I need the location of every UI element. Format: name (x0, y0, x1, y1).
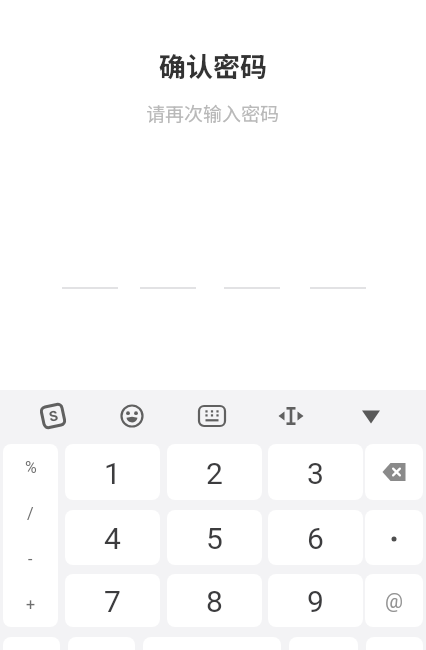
button[interactable] (349, 394, 393, 438)
button[interactable]: 8 (167, 574, 262, 627)
button[interactable]: 4 (65, 510, 160, 565)
button[interactable]: % (3, 444, 58, 490)
button[interactable]: 7 (65, 574, 160, 627)
staticText: - (28, 550, 33, 569)
button[interactable]: 6 (268, 510, 363, 565)
button[interactable] (190, 394, 234, 438)
button[interactable]: / (3, 490, 58, 536)
staticText: 4 (104, 521, 121, 556)
staticText: S (47, 407, 59, 425)
staticText: 6 (307, 521, 324, 556)
staticText: + (26, 595, 36, 614)
button[interactable]: - (3, 536, 58, 582)
staticText: 请再次输入密码 (146, 99, 280, 127)
button[interactable]: 9 (268, 574, 363, 627)
staticText: 8 (206, 584, 223, 619)
button[interactable]: 3 (268, 444, 363, 500)
staticText: 7 (104, 584, 121, 619)
staticText: 3 (307, 456, 324, 491)
button[interactable]: 5 (167, 510, 262, 565)
button[interactable] (365, 510, 423, 565)
button[interactable]: @ (365, 574, 423, 627)
staticText: 确认密码 (159, 46, 267, 85)
staticText: 9 (307, 584, 324, 619)
button[interactable]: 2 (167, 444, 262, 500)
button[interactable] (110, 394, 154, 438)
staticText: @ (385, 589, 403, 612)
button[interactable]: S (39, 402, 67, 430)
button[interactable] (365, 444, 423, 500)
staticText: 1 (104, 456, 121, 491)
button[interactable]: 1 (65, 444, 160, 500)
staticText: 5 (206, 521, 223, 556)
staticText: % (25, 458, 37, 477)
staticText: 2 (206, 456, 223, 491)
button[interactable]: + (3, 581, 58, 627)
staticText: / (27, 504, 34, 523)
button[interactable] (269, 394, 313, 438)
